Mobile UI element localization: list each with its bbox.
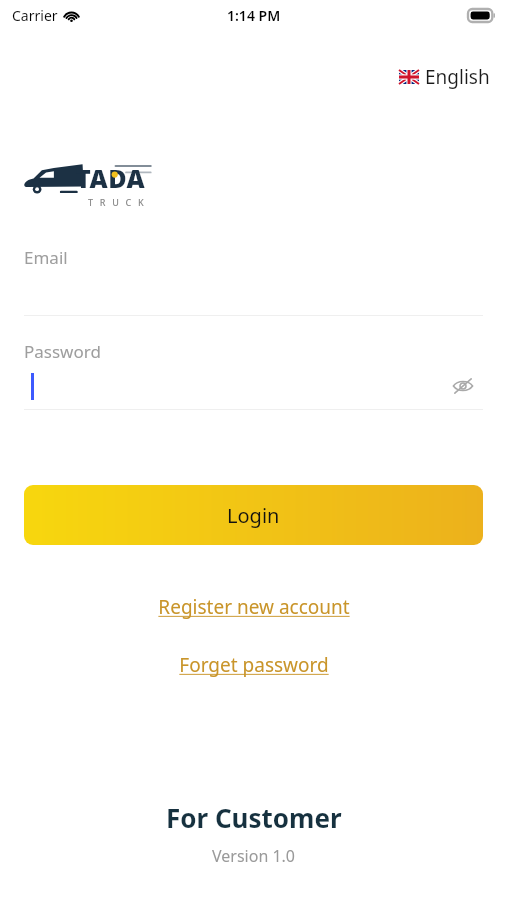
staticText: Version 1.0: [212, 845, 296, 867]
button[interactable]: Forget password: [171, 649, 337, 681]
staticText: Forget password: [179, 652, 329, 678]
button[interactable]: Show password: [445, 368, 481, 404]
staticText: Login: [227, 502, 280, 529]
button[interactable]: English: [397, 60, 492, 94]
staticText: T R U C K: [88, 196, 146, 208]
button[interactable]: Login: [24, 485, 483, 545]
button[interactable]: Show password: [0, 363, 507, 409]
staticText: Password: [24, 340, 101, 363]
button[interactable]: Register new account: [150, 591, 358, 623]
staticText: Register new account: [158, 594, 350, 620]
staticText: English: [425, 64, 490, 90]
staticText: For Customer: [166, 800, 342, 835]
staticText: Carrier: [12, 6, 58, 25]
staticText: Email: [24, 246, 68, 269]
staticText: TADA: [76, 161, 146, 195]
staticText: 1:14 PM: [227, 6, 281, 25]
